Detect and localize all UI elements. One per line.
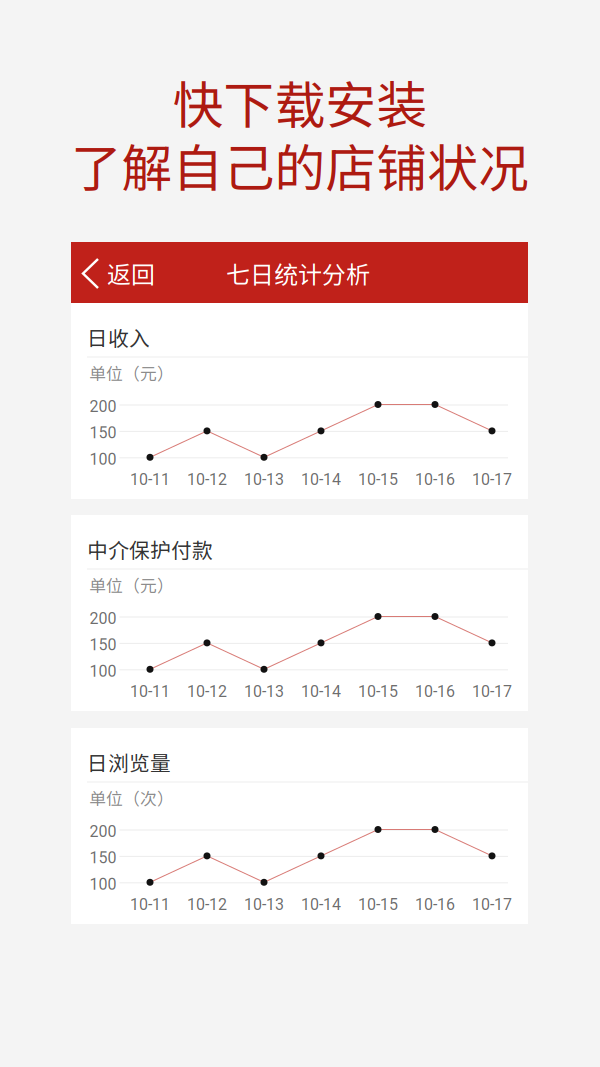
staticText: 10-15 xyxy=(358,682,398,701)
staticText: 10-16 xyxy=(415,470,455,489)
staticText: 10-12 xyxy=(187,895,227,914)
staticText: 10-14 xyxy=(301,470,341,489)
staticText: 10-17 xyxy=(472,895,512,914)
staticText: 中介保护付款 xyxy=(87,534,213,564)
staticText: 单位（次） xyxy=(89,786,174,810)
staticText: 10-13 xyxy=(244,470,284,489)
staticText: 10-16 xyxy=(415,895,455,914)
staticText: 单位（元） xyxy=(89,361,174,385)
staticText: 日浏览量 xyxy=(87,747,171,777)
staticText: 150 xyxy=(89,635,116,654)
staticText: 10-12 xyxy=(187,682,227,701)
staticText: 150 xyxy=(89,848,116,867)
staticText: 200 xyxy=(89,397,116,416)
staticText: 10-17 xyxy=(472,682,512,701)
staticText: 10-11 xyxy=(130,682,170,701)
staticText: 10-13 xyxy=(244,895,284,914)
staticText: 100 xyxy=(89,875,116,894)
staticText: 七日统计分析 xyxy=(226,256,370,290)
staticText: 了解自己的店铺状况 xyxy=(70,128,529,201)
staticText: 100 xyxy=(89,450,116,469)
staticText: 10-13 xyxy=(244,682,284,701)
staticText: 快下载安装 xyxy=(172,65,427,138)
staticText: 10-15 xyxy=(358,470,398,489)
staticText: 150 xyxy=(89,423,116,442)
staticText: 100 xyxy=(89,662,116,681)
staticText: 10-12 xyxy=(187,470,227,489)
staticText: 单位（元） xyxy=(89,573,174,597)
staticText: 10-11 xyxy=(130,470,170,489)
staticText: 返回 xyxy=(107,256,155,290)
staticText: 日收入 xyxy=(87,322,150,352)
staticText: 10-11 xyxy=(130,895,170,914)
button[interactable]: 返回 xyxy=(80,242,175,303)
staticText: 200 xyxy=(89,822,116,841)
staticText: 10-14 xyxy=(301,682,341,701)
staticText: 10-15 xyxy=(358,895,398,914)
staticText: 10-16 xyxy=(415,682,455,701)
staticText: 200 xyxy=(89,609,116,628)
staticText: 10-17 xyxy=(472,470,512,489)
staticText: 10-14 xyxy=(301,895,341,914)
